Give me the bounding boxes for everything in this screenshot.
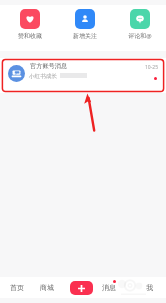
button[interactable]: 消息 [102,282,116,293]
staticText: 10-25 [145,64,159,71]
staticText: 商城 [40,283,54,292]
button[interactable]: 评论和@ [113,9,166,40]
button[interactable]: 发布 [70,281,93,295]
button[interactable]: 新增关注 [58,9,112,40]
staticText: 赞和收藏 [18,32,42,40]
staticText: 消息 [102,283,116,292]
button[interactable]: 我 [145,282,153,293]
button[interactable]: 赞和收藏 [3,9,57,40]
staticText: 评论和@ [128,32,152,40]
button[interactable]: 官方账号消息 [0,58,166,93]
staticText: 我 [146,283,153,292]
staticText: 首页 [10,283,24,292]
button[interactable]: 首页 [10,282,24,293]
staticText: 官方账号消息 [30,62,68,70]
staticText: 新增关注 [73,32,97,40]
button[interactable]: 商城 [40,282,54,293]
staticText: 小红书成长 [29,73,57,80]
